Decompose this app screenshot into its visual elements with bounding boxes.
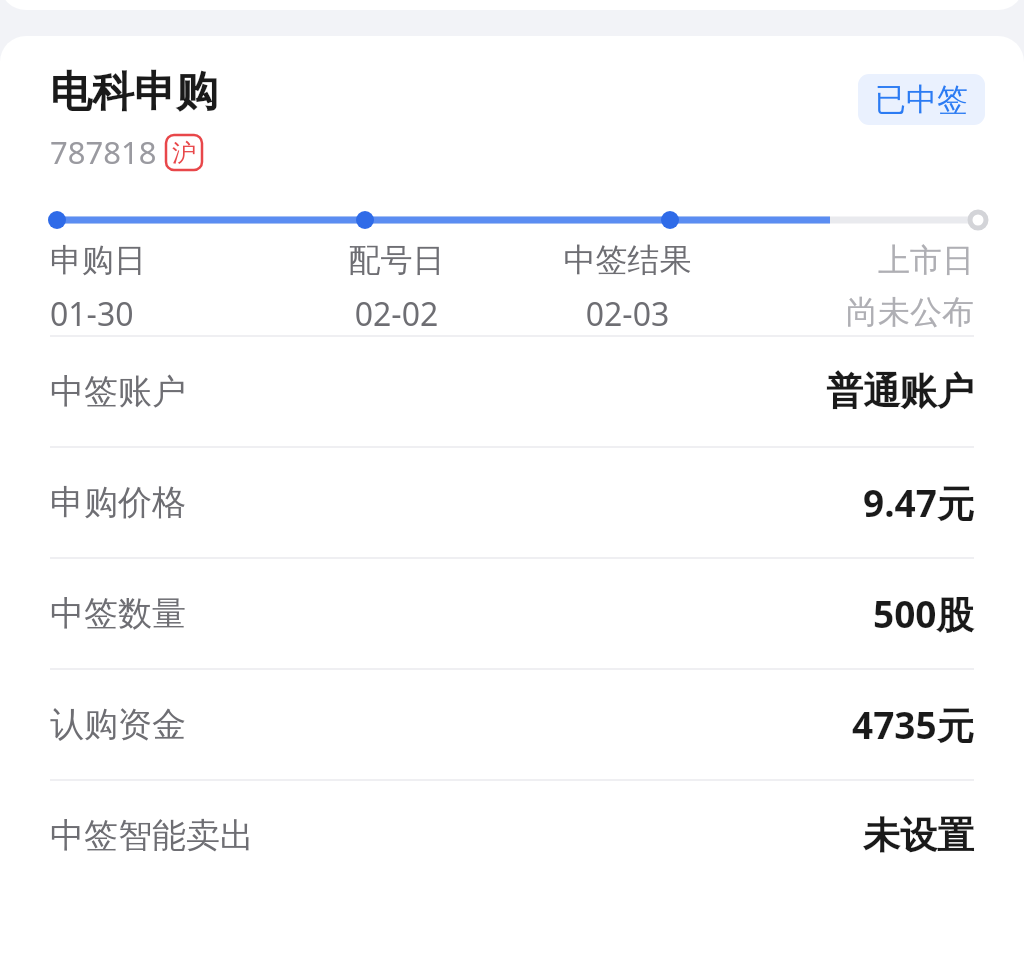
button[interactable]: 申购价格 [0, 448, 1024, 557]
button[interactable]: 中签账户 [0, 337, 1024, 446]
staticText: 电科申购 [50, 66, 218, 119]
staticText: 配号日 [281, 240, 512, 280]
staticText: 已中签 [875, 80, 968, 119]
staticText: 4735元 [852, 699, 974, 750]
button[interactable]: 认购资金 [0, 670, 1024, 779]
staticText: 普通账户 [826, 368, 974, 415]
staticText: 上市日 [743, 240, 974, 280]
staticText: 沪 [172, 138, 196, 168]
staticText: 787818 [50, 131, 157, 173]
staticText: 尚未公布 [743, 292, 974, 332]
staticText: 500股 [873, 588, 974, 639]
staticText: 中签数量 [50, 592, 186, 635]
button[interactable]: 电科申购 [0, 36, 1024, 184]
button[interactable]: 已中签 [858, 74, 985, 125]
button[interactable]: 中签智能卖出 [0, 781, 1024, 890]
staticText: 02-03 [512, 292, 743, 336]
staticText: 未设置 [863, 812, 974, 859]
staticText: 9.47元 [863, 477, 974, 528]
staticText: 中签结果 [512, 240, 743, 280]
staticText: 认购资金 [50, 703, 186, 746]
staticText: 中签账户 [50, 370, 186, 413]
button[interactable]: 中签数量 [0, 559, 1024, 668]
staticText: 01-30 [50, 292, 281, 336]
staticText: 02-02 [281, 292, 512, 336]
staticText: 申购价格 [50, 481, 186, 524]
staticText: 中签智能卖出 [50, 814, 254, 857]
staticText: 申购日 [50, 240, 281, 280]
